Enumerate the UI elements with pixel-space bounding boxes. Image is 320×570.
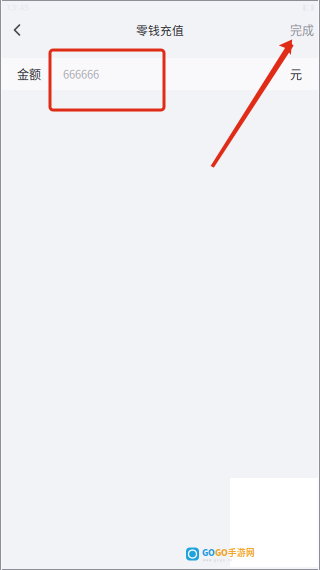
staticText: ◧▮ [302, 2, 314, 12]
staticText: 手游网 [228, 546, 255, 558]
button[interactable]: 返回 [2, 15, 32, 45]
staticText: GO [202, 546, 215, 558]
staticText: GO [215, 546, 228, 558]
staticText: 完成 [290, 21, 314, 39]
staticText: 元 [290, 65, 302, 83]
staticText: 13:45 [6, 1, 29, 13]
staticText: 666666 [63, 66, 99, 82]
staticText: 金额 [17, 65, 41, 83]
staticText: 零钱充值 [136, 21, 184, 38]
button[interactable]: 金额 [0, 58, 320, 90]
staticText: w w w . g o g o . c n [203, 558, 232, 562]
button[interactable]: 完成 [274, 15, 314, 45]
